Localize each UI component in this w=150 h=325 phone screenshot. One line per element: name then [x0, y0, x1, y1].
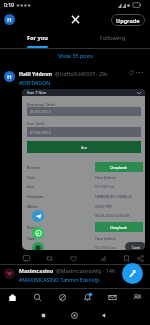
staticText: Canlı — [132, 245, 140, 250]
staticText: (21.767) xxx — [95, 245, 116, 250]
staticText: · — [96, 70, 98, 77]
staticText: Onaylandı — [110, 225, 128, 230]
button[interactable]: Home — [0, 288, 25, 308]
button[interactable]: Maximcasino — [0, 264, 150, 288]
button[interactable]: For you — [0, 29, 75, 48]
staticText: HEMENDEK / NVALLE — [95, 194, 132, 199]
staticText: #DEFİWOON — [19, 79, 51, 86]
staticText: Hesaptan — [27, 194, 44, 199]
button[interactable]: Upgrade — [111, 14, 145, 26]
staticText: Ara — [81, 145, 88, 150]
staticText: 06/04/2023 — [30, 109, 51, 114]
button[interactable]: Ara — [27, 141, 141, 153]
staticText: Show 35 posts — [58, 52, 93, 59]
button[interactable]: Compose post — [122, 263, 143, 284]
staticText: 29s — [99, 70, 108, 77]
staticText: Para Çekme — [95, 175, 116, 180]
staticText: H — [7, 73, 12, 81]
staticText: Son Tarih: — [27, 121, 45, 126]
button[interactable]: More options — [135, 68, 144, 77]
button[interactable]: Like — [68, 253, 79, 264]
staticText: Onaylandı — [110, 165, 128, 170]
staticText: 06.05.2023 02:56:49 — [95, 213, 130, 218]
button[interactable]: Views — [98, 253, 109, 264]
button[interactable]: Notifications — [75, 288, 100, 308]
button[interactable]: Reply — [21, 253, 32, 264]
button[interactable]: Profile — [4, 14, 15, 25]
staticText: Para Çekme — [95, 236, 116, 241]
button[interactable]: Share — [135, 253, 146, 264]
button[interactable]: Grok — [50, 288, 75, 308]
button[interactable]: Communities — [125, 288, 150, 308]
staticText: 07/04/2023 — [30, 130, 51, 135]
staticText: Bonans — [27, 165, 41, 170]
staticText: Upgrade — [116, 17, 140, 24]
staticText: #MAXIMCASINO Tahmin Etkinliği — [19, 276, 100, 283]
staticText: Kod — [27, 184, 34, 189]
staticText: Halil Yıldırım — [19, 70, 53, 77]
staticText: Tarih — [27, 236, 36, 241]
staticText: Miktar — [27, 204, 39, 209]
staticText: H — [7, 16, 12, 24]
button[interactable]: H — [0, 62, 150, 266]
staticText: Following — [100, 34, 126, 42]
staticText: Tarih — [27, 175, 36, 180]
button[interactable]: Following — [75, 29, 150, 48]
staticText: 14h — [106, 267, 116, 274]
button[interactable]: Bookmark — [121, 253, 132, 264]
button[interactable]: Messages — [100, 288, 125, 308]
staticText: 4.000 TRY — [95, 204, 112, 209]
button[interactable]: Search — [25, 288, 50, 308]
button[interactable]: Show 35 posts — [0, 49, 150, 62]
staticText: Başlangıç Tarihi — [27, 102, 56, 107]
staticText: (21.767) nn — [95, 184, 115, 189]
staticText: Bonans — [27, 225, 41, 230]
staticText: Maximcasino — [19, 267, 54, 274]
staticText: @UdHxXU40337 — [55, 70, 95, 77]
staticText: For you — [27, 34, 48, 42]
button[interactable]: Repost — [44, 253, 55, 264]
staticText: 0:19 — [4, 2, 14, 9]
staticText: @MaximcasinoAfg — [56, 267, 102, 274]
staticText: Son 7 Gün — [27, 90, 47, 95]
staticText: · — [103, 267, 105, 274]
